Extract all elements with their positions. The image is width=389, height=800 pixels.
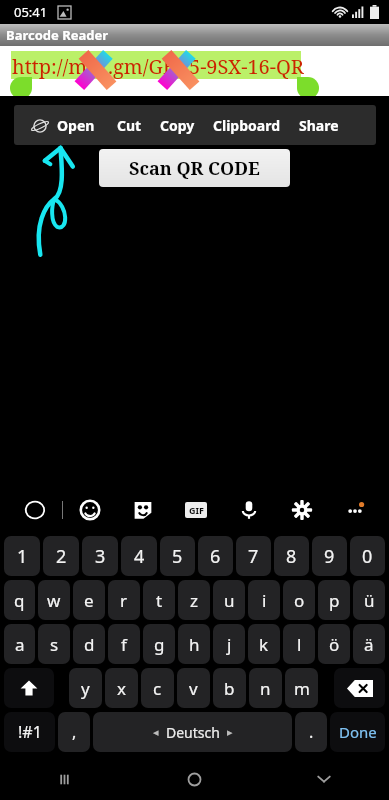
- button[interactable]: g: [143, 624, 175, 664]
- button[interactable]: Recents: [0, 758, 129, 800]
- button[interactable]: ä: [353, 624, 385, 664]
- staticText: f: [121, 633, 127, 656]
- button[interactable]: Home: [129, 758, 259, 800]
- button[interactable]: Shift: [4, 668, 54, 708]
- button[interactable]: v: [177, 668, 210, 708]
- button[interactable]: GIF: [169, 486, 222, 534]
- staticText: 8: [286, 544, 297, 569]
- button[interactable]: 7: [236, 536, 271, 576]
- staticText: Clipboard: [213, 116, 281, 135]
- staticText: 4: [134, 544, 145, 569]
- button[interactable]: l: [283, 624, 315, 664]
- button[interactable]: Settings: [275, 486, 328, 534]
- button[interactable]: ◂: [93, 712, 292, 752]
- staticText: ◂: [153, 726, 159, 739]
- staticText: ä: [364, 633, 374, 656]
- button[interactable]: 5: [160, 536, 195, 576]
- staticText: 1: [17, 544, 28, 569]
- button[interactable]: q: [4, 580, 35, 620]
- button[interactable]: 3: [82, 536, 118, 576]
- button[interactable]: Translate: [8, 486, 62, 534]
- other: Shift: [19, 678, 39, 698]
- button[interactable]: m: [285, 668, 318, 708]
- button[interactable]: Open: [32, 116, 95, 135]
- button[interactable]: Voice input: [222, 486, 275, 534]
- button[interactable]: Clipboard: [213, 116, 281, 135]
- button[interactable]: z: [178, 580, 210, 620]
- button[interactable]: 9: [312, 536, 347, 576]
- button[interactable]: d: [73, 624, 105, 664]
- button[interactable]: p: [318, 580, 350, 620]
- button[interactable]: k: [248, 624, 280, 664]
- button[interactable]: Backspace: [334, 668, 385, 708]
- button[interactable]: c: [141, 668, 174, 708]
- button[interactable]: h: [178, 624, 210, 664]
- button[interactable]: r: [108, 580, 140, 620]
- button[interactable]: Emoji: [63, 486, 116, 534]
- button[interactable]: 8: [274, 536, 309, 576]
- staticText: i: [262, 589, 267, 612]
- button[interactable]: a: [4, 624, 35, 664]
- staticText: .: [309, 721, 314, 743]
- button[interactable]: 4: [121, 536, 157, 576]
- button[interactable]: e: [73, 580, 105, 620]
- button[interactable]: !#1: [4, 712, 55, 752]
- staticText: Cut: [117, 116, 142, 135]
- other: Open: [32, 118, 48, 134]
- staticText: b: [224, 677, 235, 700]
- staticText: Copy: [160, 116, 195, 135]
- button[interactable]: Cut: [117, 116, 142, 135]
- staticText: o: [294, 589, 305, 612]
- staticText: a: [15, 633, 25, 656]
- staticText: s: [50, 633, 59, 656]
- staticText: ü: [364, 589, 375, 612]
- staticText: x: [117, 677, 126, 700]
- staticText: Done: [339, 722, 377, 742]
- button[interactable]: 2: [43, 536, 79, 576]
- button[interactable]: b: [213, 668, 246, 708]
- staticText: Share: [299, 116, 339, 135]
- staticText: u: [224, 589, 235, 612]
- button[interactable]: ö: [318, 624, 350, 664]
- staticText: z: [190, 589, 198, 612]
- button[interactable]: ,: [58, 712, 90, 752]
- button[interactable]: 6: [198, 536, 233, 576]
- button[interactable]: i: [248, 580, 280, 620]
- button[interactable]: s: [38, 624, 70, 664]
- staticText: e: [84, 589, 94, 612]
- staticText: Deutsch: [166, 723, 220, 742]
- staticText: l: [297, 633, 302, 656]
- staticText: 7: [248, 544, 259, 569]
- staticText: Open: [57, 116, 95, 135]
- staticText: 5: [172, 544, 183, 569]
- button[interactable]: 0: [350, 536, 385, 576]
- button[interactable]: Share: [299, 116, 339, 135]
- button[interactable]: Done: [330, 712, 385, 752]
- staticText: http://m .gm/GH 5-9SX-16-QR: [12, 53, 304, 80]
- button[interactable]: o: [283, 580, 315, 620]
- staticText: 6: [210, 544, 221, 569]
- button[interactable]: ü: [353, 580, 385, 620]
- staticText: q: [14, 589, 25, 612]
- button[interactable]: Stickers: [116, 486, 169, 534]
- button[interactable]: j: [213, 624, 245, 664]
- button[interactable]: f: [108, 624, 140, 664]
- button[interactable]: n: [249, 668, 282, 708]
- button[interactable]: w: [38, 580, 70, 620]
- button[interactable]: y: [69, 668, 102, 708]
- button[interactable]: Copy: [160, 116, 195, 135]
- staticText: p: [329, 589, 340, 612]
- button[interactable]: Hide keyboard: [259, 758, 389, 800]
- staticText: g: [154, 633, 165, 656]
- button[interactable]: x: [105, 668, 138, 708]
- staticText: Barcode Reader: [6, 26, 109, 44]
- button[interactable]: t: [143, 580, 175, 620]
- button[interactable]: 1: [4, 536, 40, 576]
- button[interactable]: .: [295, 712, 327, 752]
- staticText: 3: [95, 544, 106, 569]
- staticText: m: [294, 677, 310, 700]
- button[interactable]: More options: [328, 486, 381, 534]
- button[interactable]: u: [213, 580, 245, 620]
- staticText: v: [189, 677, 198, 700]
- button[interactable]: Scan QR CODE: [99, 149, 290, 187]
